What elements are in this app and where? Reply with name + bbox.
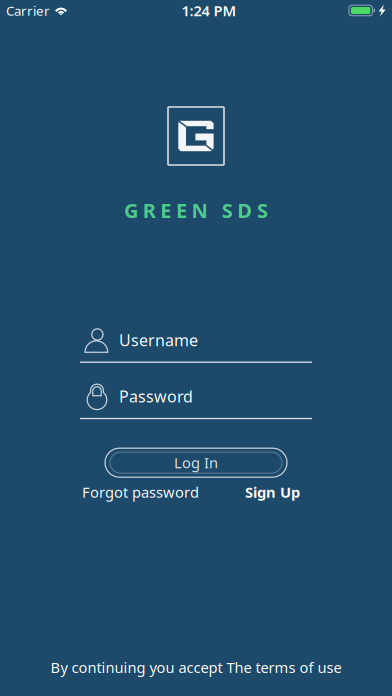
button[interactable]: Forgot password (80, 482, 199, 502)
staticText: Forgot password (82, 482, 199, 502)
staticText: By continuing you accept The terms of us… (50, 657, 341, 677)
staticText: Carrier (6, 2, 50, 19)
button[interactable]: Sign Up (245, 482, 312, 502)
staticText: Log In (174, 453, 218, 472)
staticText: GREEN SDS (124, 197, 268, 224)
staticText: Password (119, 386, 193, 407)
button[interactable]: Log In (105, 448, 287, 477)
staticText: Sign Up (245, 482, 300, 502)
staticText: Username (119, 329, 198, 351)
staticText: 1:24 PM (181, 1, 236, 20)
